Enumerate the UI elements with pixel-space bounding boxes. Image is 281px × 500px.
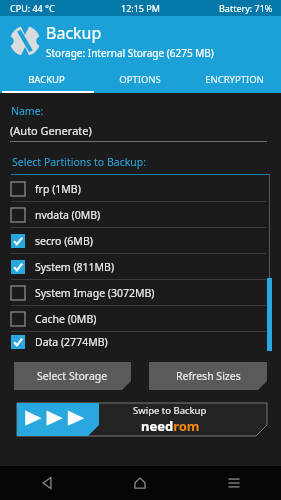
staticText: Swipe to Backup — [133, 404, 207, 417]
staticText: OPTIONS — [119, 73, 161, 86]
staticText: Backup — [46, 22, 102, 44]
button[interactable]: Cache (0MB) — [0, 306, 281, 331]
button[interactable]: nvdata (0MB) — [0, 202, 281, 227]
staticText: Storage: Internal Storage (6275 MB) — [46, 46, 214, 60]
button[interactable]: System Image (3072MB) — [0, 280, 281, 305]
button[interactable]: Back — [0, 466, 93, 500]
staticText: Battery: 71% — [219, 2, 273, 14]
staticText: System (811MB) — [35, 260, 115, 274]
button[interactable]: Swipe to Backup — [17, 403, 267, 436]
staticText: Select Partitions to Backup: — [12, 155, 147, 169]
staticText: frp (1MB) — [35, 182, 81, 196]
button[interactable]: System (811MB) — [0, 254, 281, 279]
button[interactable]: Home — [93, 466, 187, 500]
button[interactable]: ENCRYPTION — [187, 65, 281, 93]
staticText: secro (6MB) — [35, 234, 93, 248]
other: TWRP logo — [10, 26, 40, 56]
staticText: BACKUP — [28, 73, 65, 86]
staticText: Refresh Sizes — [176, 369, 241, 383]
staticText: ENCRYPTION — [205, 73, 264, 86]
button[interactable]: Menu — [187, 466, 281, 500]
staticText: (Auto Generate) — [10, 123, 92, 138]
staticText: CPU: 44 °C — [10, 2, 55, 14]
staticText: nvdata (0MB) — [35, 208, 101, 222]
button[interactable]: Data (2774MB) — [0, 332, 281, 352]
staticText: Select Storage — [37, 369, 108, 383]
button[interactable]: OPTIONS — [93, 65, 187, 93]
button[interactable]: frp (1MB) — [0, 176, 281, 201]
staticText: Data (2774MB) — [35, 335, 108, 349]
button[interactable]: BACKUP — [0, 65, 93, 93]
button[interactable]: (Auto Generate) — [10, 123, 267, 142]
button[interactable]: Refresh Sizes — [149, 362, 267, 390]
staticText: 12:15 PM — [121, 2, 160, 14]
staticText: needrom — [141, 417, 200, 435]
button[interactable]: Select Storage — [14, 362, 131, 390]
staticText: Name: — [11, 104, 44, 118]
button[interactable]: secro (6MB) — [0, 228, 281, 253]
staticText: Cache (0MB) — [35, 312, 97, 326]
staticText: System Image (3072MB) — [35, 286, 155, 300]
